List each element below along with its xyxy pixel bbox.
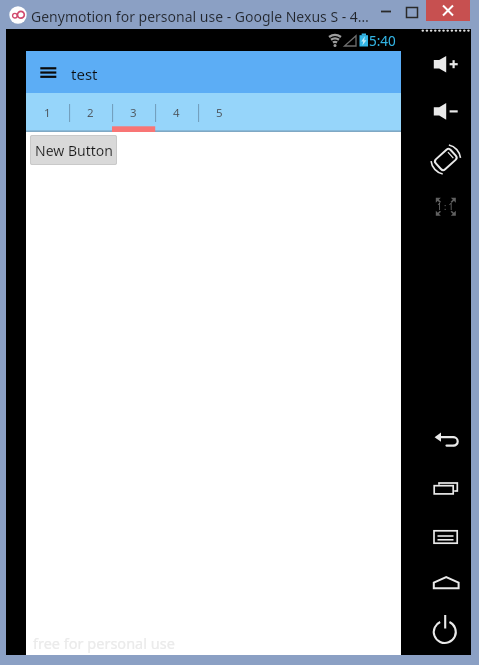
button[interactable]: 4 [155, 93, 198, 132]
staticText: 5:40 [369, 32, 396, 50]
button[interactable]: New Button [30, 135, 117, 165]
button[interactable] [424, 185, 468, 227]
staticText: free for personal use [33, 633, 175, 653]
button[interactable] [398, 0, 422, 21]
button[interactable]: 2 [69, 93, 112, 132]
staticText: test [71, 64, 98, 84]
staticText: New Button [35, 141, 113, 160]
button[interactable]: 1 [26, 93, 69, 132]
button[interactable] [424, 467, 468, 509]
staticText: 3 [130, 105, 137, 121]
staticText: 1 : 1 [437, 201, 454, 213]
staticText: Genymotion for personal use - Google Nex… [31, 7, 369, 26]
button[interactable]: 5 [198, 93, 241, 132]
staticText: 5 [216, 105, 223, 121]
button[interactable]: 3 [112, 93, 155, 132]
button[interactable] [424, 43, 468, 85]
button[interactable] [424, 561, 468, 603]
staticText: 2 [87, 105, 94, 121]
button[interactable] [426, 0, 470, 21]
staticText: 1 [44, 105, 51, 121]
button[interactable] [424, 420, 468, 462]
button[interactable] [372, 0, 394, 21]
button[interactable] [424, 609, 468, 651]
button[interactable] [424, 138, 468, 180]
button[interactable] [424, 516, 468, 558]
staticText: 4 [173, 105, 180, 121]
button[interactable] [424, 90, 468, 132]
button[interactable] [32, 56, 68, 88]
